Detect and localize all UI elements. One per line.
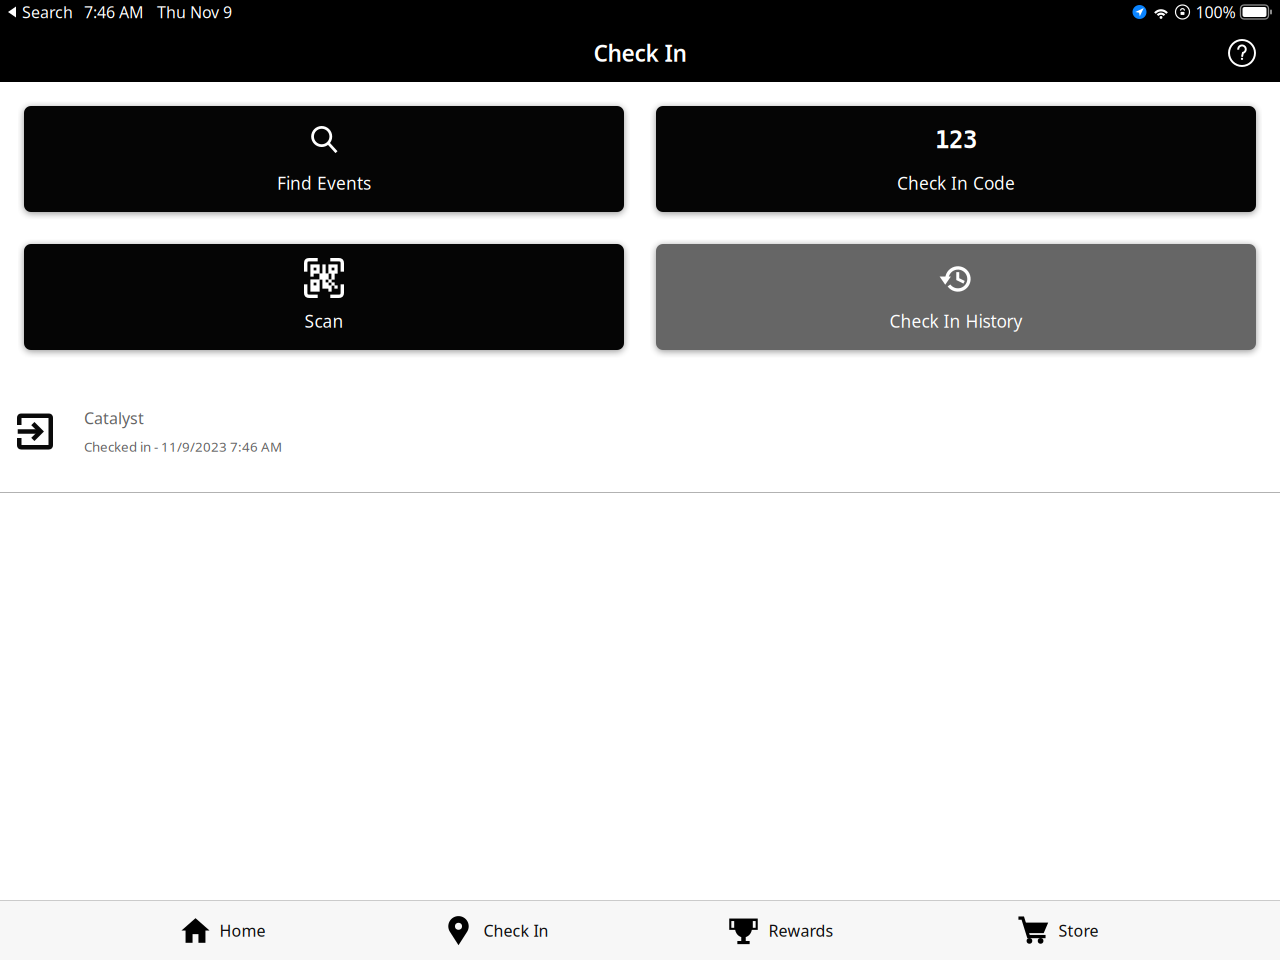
staticText: 100% — [1195, 1, 1235, 23]
staticText: Store — [1058, 920, 1098, 941]
button[interactable]: Catalyst — [0, 350, 1280, 492]
staticText: 123 — [935, 126, 977, 154]
staticText: Rewards — [768, 920, 833, 941]
staticText: Check In History — [889, 309, 1022, 332]
button[interactable]: Home — [177, 901, 269, 960]
button[interactable]: 123 — [656, 106, 1256, 212]
staticText: Catalyst — [84, 407, 144, 429]
staticText: 7:46 AM — [84, 1, 144, 23]
staticText: Checked in - 11/9/2023 7:46 AM — [84, 438, 282, 455]
button[interactable]: Store — [1013, 901, 1102, 960]
button[interactable]: Scan — [24, 244, 624, 350]
staticText: Check In — [593, 38, 686, 68]
staticText: Check In — [483, 920, 548, 941]
button[interactable]: Help — [1216, 30, 1268, 76]
staticText: Search — [22, 1, 73, 23]
staticText: Thu Nov 9 — [157, 1, 232, 23]
staticText: Find Events — [277, 171, 371, 194]
button[interactable]: Check In History — [656, 244, 1256, 350]
button[interactable]: Rewards — [724, 901, 837, 960]
button[interactable]: Check In — [439, 901, 552, 960]
staticText: Check In Code — [897, 171, 1015, 194]
staticText: Scan — [304, 309, 343, 332]
staticText: Home — [219, 920, 265, 941]
button[interactable]: Find Events — [24, 106, 624, 212]
